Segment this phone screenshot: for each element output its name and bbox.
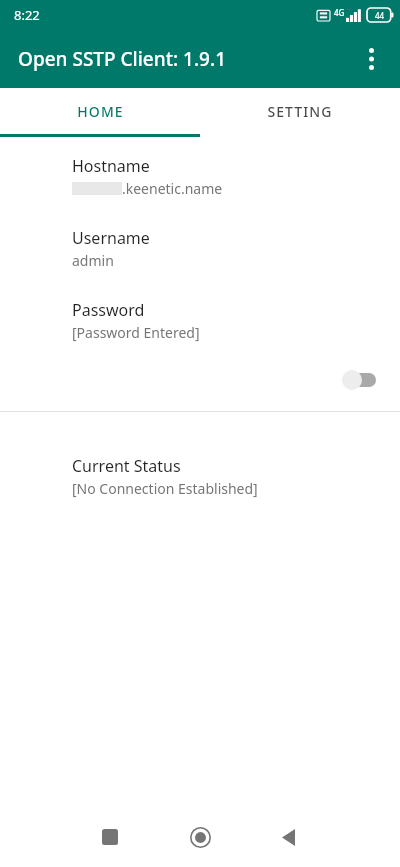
staticText: 8:22	[14, 6, 40, 24]
button[interactable]: Recent apps	[88, 815, 132, 859]
staticText: Current Status	[72, 455, 181, 477]
button[interactable]: Home	[178, 815, 222, 859]
button[interactable]: Username	[0, 227, 400, 270]
staticText: 4G	[334, 7, 345, 18]
staticText: Hostname	[72, 155, 150, 177]
staticText: admin	[72, 251, 114, 270]
button[interactable]: HOME	[0, 88, 200, 134]
button[interactable]: Password	[0, 299, 400, 342]
staticText: 44	[375, 10, 385, 21]
staticText: Password	[72, 299, 145, 321]
staticText: SETTING	[267, 102, 333, 121]
button[interactable]: Current Status	[0, 455, 400, 498]
staticText: [Password Entered]	[72, 323, 200, 342]
staticText: Open SSTP Client: 1.9.1	[18, 46, 227, 72]
button[interactable]: Toggle connection	[0, 362, 400, 398]
button[interactable]: Back	[266, 815, 310, 859]
staticText: HOME	[77, 102, 124, 121]
staticText: Username	[72, 227, 150, 249]
button[interactable]: SETTING	[200, 88, 400, 134]
button[interactable]: Hostname	[0, 155, 400, 198]
staticText: .keenetic.name	[122, 179, 223, 198]
button[interactable]: More options	[349, 37, 393, 81]
staticText: [No Connection Established]	[72, 479, 258, 498]
